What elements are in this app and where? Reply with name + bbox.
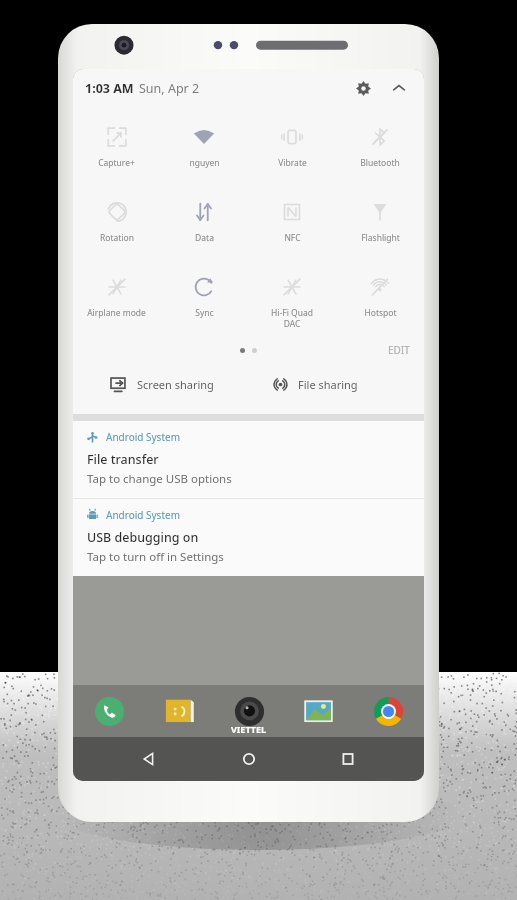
- button[interactable]: Airplane mode: [73, 263, 160, 338]
- button[interactable]: Capture+: [73, 113, 160, 188]
- button[interactable]: Screen sharing: [73, 364, 248, 404]
- staticText: Airplane mode: [87, 307, 146, 319]
- button[interactable]: EDIT: [388, 343, 410, 357]
- staticText: Android System: [106, 508, 181, 522]
- staticText: Screen sharing: [137, 377, 214, 392]
- button[interactable]: Data: [160, 188, 248, 263]
- staticText: Tap to change USB options: [87, 471, 232, 487]
- button[interactable]: Home: [226, 737, 272, 781]
- staticText: Hi-Fi Quad DAC: [271, 307, 313, 329]
- button[interactable]: nguyen: [160, 113, 248, 188]
- staticText: Flashlight: [361, 232, 400, 244]
- staticText: EDIT: [388, 343, 410, 357]
- button[interactable]: Phone: [87, 689, 131, 733]
- button[interactable]: Settings: [348, 73, 378, 103]
- staticText: File transfer: [87, 451, 159, 468]
- button[interactable]: Gallery: [296, 689, 340, 733]
- button[interactable]: Messages: [157, 689, 201, 733]
- button[interactable]: Recents: [325, 737, 371, 781]
- button[interactable]: Flashlight: [336, 188, 424, 263]
- staticText: Capture+: [98, 157, 135, 169]
- staticText: Sync: [195, 307, 214, 319]
- button[interactable]: Chrome: [366, 689, 410, 733]
- staticText: Tap to turn off in Settings: [87, 549, 224, 565]
- button[interactable]: Android System: [73, 421, 424, 498]
- button[interactable]: File sharing: [248, 364, 424, 404]
- staticText: Data: [195, 232, 214, 244]
- staticText: Hotspot: [364, 307, 397, 319]
- button[interactable]: Camera: [227, 689, 271, 733]
- button[interactable]: Rotation: [73, 188, 160, 263]
- button[interactable]: NFC: [248, 188, 336, 263]
- button[interactable]: Collapse: [384, 73, 414, 103]
- staticText: File sharing: [298, 377, 358, 392]
- staticText: Vibrate: [278, 157, 307, 169]
- staticText: VIETTEL: [231, 723, 267, 735]
- button[interactable]: Hotspot: [336, 263, 424, 338]
- staticText: 1:03 AM: [85, 80, 134, 97]
- staticText: USB debugging on: [87, 529, 199, 546]
- staticText: nguyen: [189, 157, 220, 169]
- button[interactable]: Hi-Fi Quad DAC: [248, 263, 336, 338]
- button[interactable]: Android System: [73, 499, 424, 576]
- staticText: Bluetooth: [360, 157, 400, 169]
- button[interactable]: Sync: [160, 263, 248, 338]
- button[interactable]: Bluetooth: [336, 113, 424, 188]
- staticText: Sun, Apr 2: [139, 80, 200, 97]
- staticText: Rotation: [100, 232, 134, 244]
- button[interactable]: Back: [126, 737, 172, 781]
- button[interactable]: Vibrate: [248, 113, 336, 188]
- staticText: NFC: [284, 232, 301, 244]
- staticText: Android System: [106, 430, 181, 444]
